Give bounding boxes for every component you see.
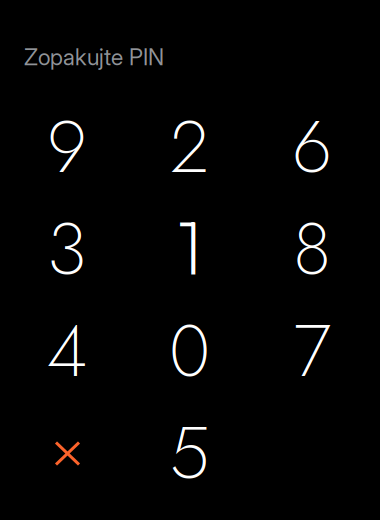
- button[interactable]: 4: [6, 300, 128, 402]
- staticText: 7: [293, 299, 330, 403]
- button[interactable]: 1: [128, 198, 251, 300]
- button[interactable]: 6: [251, 96, 373, 198]
- staticText: 2: [170, 95, 209, 199]
- staticText: 1: [177, 199, 202, 294]
- button[interactable]: 7: [251, 300, 373, 402]
- staticText: Zopakujte PIN: [24, 43, 164, 71]
- staticText: 8: [293, 197, 331, 301]
- button[interactable]: 2: [128, 96, 251, 198]
- button[interactable]: 0: [128, 300, 251, 402]
- button[interactable]: 9: [6, 96, 128, 198]
- staticText: 9: [47, 95, 87, 199]
- button[interactable]: 8: [251, 198, 373, 300]
- button[interactable]: Cancel: [6, 402, 128, 504]
- staticText: 5: [169, 401, 209, 505]
- staticText: 6: [292, 95, 332, 199]
- staticText: 0: [169, 299, 210, 403]
- button[interactable]: 3: [6, 198, 128, 300]
- button[interactable]: 5: [128, 402, 251, 504]
- staticText: 4: [46, 299, 87, 403]
- staticText: 3: [47, 197, 87, 301]
